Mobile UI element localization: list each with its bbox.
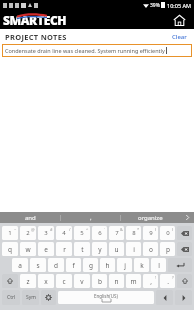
staticText: j xyxy=(124,261,126,270)
button[interactable]: r xyxy=(56,242,72,256)
button[interactable]: 5 xyxy=(74,226,90,240)
button[interactable]: a xyxy=(12,258,28,272)
staticText: 0 xyxy=(166,229,170,237)
button[interactable]: Enter xyxy=(168,258,192,272)
other: Shift xyxy=(182,278,188,284)
button[interactable]: h xyxy=(100,258,115,272)
staticText: Condensate drain line was cleaned. Syste… xyxy=(5,47,165,54)
button[interactable]: c xyxy=(56,274,72,288)
other: Enter xyxy=(176,262,184,268)
button[interactable]: u xyxy=(109,242,124,256)
button[interactable]: d xyxy=(48,258,64,272)
button[interactable]: x xyxy=(38,274,54,288)
button[interactable]: q xyxy=(2,242,18,256)
button[interactable]: Shift xyxy=(2,274,18,288)
button[interactable]: Keyboard settings xyxy=(41,290,56,305)
button[interactable]: g xyxy=(83,258,98,272)
button[interactable]: m xyxy=(126,274,141,288)
button[interactable]: s xyxy=(30,258,46,272)
staticText: Sym xyxy=(26,294,36,301)
button[interactable]: 8 xyxy=(126,226,141,240)
staticText: h xyxy=(105,261,110,270)
button[interactable]: 3 xyxy=(38,226,54,240)
button[interactable]: Shift xyxy=(177,274,192,288)
staticText: c xyxy=(62,277,66,286)
other: Shift xyxy=(7,278,13,284)
button[interactable]: v xyxy=(74,274,90,288)
button[interactable]: f xyxy=(66,258,81,272)
staticText: l xyxy=(158,261,160,270)
button[interactable]: 4 xyxy=(56,226,72,240)
staticText: TECH xyxy=(37,12,67,28)
staticText: p xyxy=(166,245,170,254)
button[interactable]: l xyxy=(151,258,166,272)
staticText: 3 xyxy=(44,229,48,237)
staticText: * xyxy=(137,227,140,232)
staticText: n xyxy=(114,277,119,286)
staticText: d xyxy=(54,261,58,270)
button[interactable]: . xyxy=(160,274,175,288)
staticText: f xyxy=(72,261,75,270)
staticText: q xyxy=(8,245,12,254)
staticText: ! xyxy=(155,275,157,280)
staticText: ? xyxy=(172,275,174,280)
button[interactable]: Move cursor right xyxy=(175,290,192,305)
button[interactable]: i xyxy=(126,242,141,256)
staticText: 7 xyxy=(115,229,119,237)
other: Move cursor left xyxy=(163,295,167,301)
button[interactable]: 6 xyxy=(92,226,107,240)
staticText: English(US) xyxy=(94,293,118,299)
button[interactable]: z xyxy=(20,274,36,288)
button[interactable]: k xyxy=(134,258,149,272)
button[interactable]: and xyxy=(0,212,60,223)
button[interactable]: y xyxy=(92,242,107,256)
button[interactable]: 0 xyxy=(160,226,175,240)
button[interactable]: Backspace xyxy=(177,242,192,256)
staticText: 10:05 AM xyxy=(167,2,191,9)
button[interactable]: w xyxy=(20,242,36,256)
button[interactable]: o xyxy=(143,242,158,256)
button[interactable]: Sym xyxy=(22,290,39,305)
button[interactable]: Backspace xyxy=(177,226,192,240)
staticText: r xyxy=(63,245,66,254)
staticText: k xyxy=(140,261,144,270)
button[interactable]: 1 xyxy=(2,226,18,240)
staticText: ( xyxy=(155,227,157,232)
staticText: m xyxy=(130,277,137,286)
staticText: Clear xyxy=(172,33,187,41)
button[interactable]: Condensate drain line was cleaned. Syste… xyxy=(2,44,192,57)
staticText: ) xyxy=(172,227,174,232)
staticText: 4 xyxy=(62,229,66,237)
staticText: and xyxy=(25,214,36,222)
button[interactable]: Clear xyxy=(170,31,189,43)
button[interactable]: More suggestions xyxy=(180,212,194,223)
button[interactable]: j xyxy=(117,258,132,272)
button[interactable]: Home xyxy=(170,11,188,29)
staticText: 1 xyxy=(8,229,12,237)
staticText: Ctrl xyxy=(7,294,16,301)
staticText: t xyxy=(81,245,84,254)
button[interactable]: 7 xyxy=(109,226,124,240)
button[interactable]: 9 xyxy=(143,226,158,240)
button[interactable]: Ctrl xyxy=(2,290,20,305)
button[interactable]: b xyxy=(92,274,107,288)
button[interactable]: n xyxy=(109,274,124,288)
button[interactable]: p xyxy=(160,242,175,256)
staticText: SMAR xyxy=(3,12,37,28)
button[interactable]: , xyxy=(143,274,158,288)
button[interactable]: organize xyxy=(121,212,180,223)
staticText: ~ xyxy=(14,227,17,232)
button[interactable]: t xyxy=(74,242,90,256)
button[interactable]: 2 xyxy=(20,226,36,240)
staticText: . xyxy=(167,277,169,286)
staticText: b xyxy=(98,277,102,286)
staticText: ` xyxy=(104,227,106,232)
staticText: , xyxy=(90,214,92,222)
other: Move cursor right xyxy=(182,295,186,301)
button[interactable]: e xyxy=(38,242,54,256)
button[interactable]: Space xyxy=(58,291,154,304)
button[interactable]: , xyxy=(61,212,120,223)
staticText: s xyxy=(36,261,40,270)
staticText: 8 xyxy=(132,229,136,237)
button[interactable]: Move cursor left xyxy=(156,290,173,305)
